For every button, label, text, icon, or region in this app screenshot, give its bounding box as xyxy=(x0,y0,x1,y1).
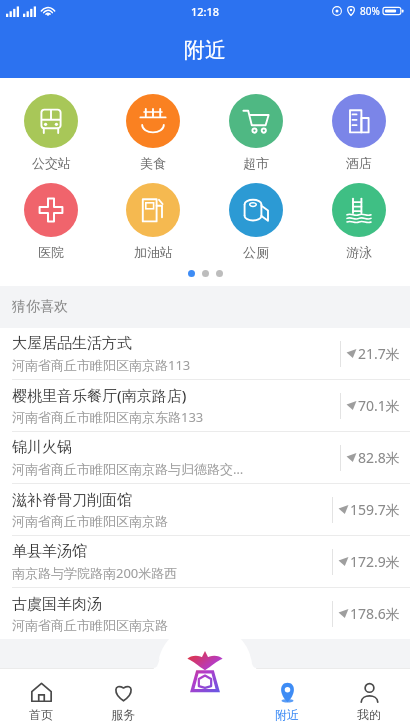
button[interactable]: 滋补脊骨刀削面馆 xyxy=(0,484,410,535)
staticText: 河南省商丘市睢阳区南京路 xyxy=(12,513,168,529)
staticText: 猜你喜欢 xyxy=(12,298,68,316)
staticText: 12:18 xyxy=(191,4,220,19)
staticText: 21.7米 xyxy=(358,344,400,363)
button[interactable]: 公厕 xyxy=(204,177,307,266)
staticText: 178.6米 xyxy=(350,604,400,623)
button[interactable]: 服务 xyxy=(82,668,164,728)
staticText: 附近 xyxy=(184,37,226,63)
button[interactable]: 大屋居品生活方式 xyxy=(0,328,410,379)
button[interactable]: 加油站 xyxy=(102,177,204,266)
staticText: 159.7米 xyxy=(350,500,400,519)
button[interactable]: 超市 xyxy=(204,88,307,177)
button[interactable]: 樱桃里音乐餐厅(南京路店) xyxy=(0,380,410,431)
staticText: 公厕 xyxy=(243,244,269,260)
button[interactable]: 单县羊汤馆 xyxy=(0,536,410,587)
staticText: 82.8米 xyxy=(358,448,400,467)
button[interactable]: 首页 xyxy=(0,668,82,728)
button[interactable]: 游泳 xyxy=(307,177,410,266)
staticText: 大屋居品生活方式 xyxy=(12,334,132,353)
staticText: 樱桃里音乐餐厅(南京路店) xyxy=(12,385,187,405)
button[interactable]: 附近 xyxy=(246,668,328,728)
button[interactable]: 锦川火锅 xyxy=(0,432,410,483)
button[interactable]: 古虞国羊肉汤 xyxy=(0,588,410,639)
staticText: 酒店 xyxy=(346,155,372,171)
staticText: 80% xyxy=(360,4,380,18)
button[interactable]: 医院 xyxy=(0,177,102,266)
button[interactable]: 我的 xyxy=(328,668,410,728)
staticText: 南京路与学院路南200米路西 xyxy=(12,564,178,582)
staticText: 172.9米 xyxy=(350,552,400,571)
staticText: 滋补脊骨刀削面馆 xyxy=(12,491,132,510)
staticText: 附近 xyxy=(275,707,299,722)
staticText: 游泳 xyxy=(346,244,372,260)
button[interactable]: 美食 xyxy=(102,88,204,177)
staticText: 河南省商丘市睢阳区南京东路133 xyxy=(12,408,204,426)
staticText: 河南省商丘市睢阳区南京路 xyxy=(12,617,168,633)
button[interactable]: 酒店 xyxy=(307,88,410,177)
staticText: 首页 xyxy=(29,707,53,722)
staticText: 加油站 xyxy=(134,244,173,260)
staticText: 古虞国羊肉汤 xyxy=(12,595,102,614)
staticText: 医院 xyxy=(38,244,64,260)
staticText: 锦川火锅 xyxy=(12,438,72,457)
button[interactable]: 中心按钮 xyxy=(183,650,227,694)
staticText: 服务 xyxy=(111,707,135,722)
staticText: 单县羊汤馆 xyxy=(12,542,87,561)
staticText: 超市 xyxy=(243,155,269,171)
staticText: 河南省商丘市睢阳区南京路113 xyxy=(12,356,191,374)
staticText: 70.1米 xyxy=(358,396,400,415)
button[interactable]: 公交站 xyxy=(0,88,102,177)
staticText: 我的 xyxy=(357,707,381,722)
button[interactable]: 附近 xyxy=(0,22,410,78)
staticText: 公交站 xyxy=(32,155,71,171)
staticText: 美食 xyxy=(140,155,166,171)
staticText: 河南省商丘市睢阳区南京路与归德路交… xyxy=(12,460,244,478)
